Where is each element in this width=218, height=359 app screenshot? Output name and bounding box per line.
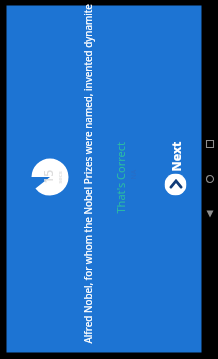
staticText: That's Correct xyxy=(112,141,127,213)
staticText: secs xyxy=(55,170,63,183)
button[interactable]: Next xyxy=(164,140,186,195)
staticText: 15 xyxy=(39,169,55,183)
staticText: NA xyxy=(128,169,138,179)
button[interactable]: Back xyxy=(201,201,218,227)
staticText: Next xyxy=(167,140,184,171)
button[interactable]: Recents xyxy=(201,131,218,157)
button[interactable]: Home xyxy=(201,166,218,192)
staticText: Alfred Nobel, for whom the Nobel Prizes … xyxy=(80,3,93,343)
